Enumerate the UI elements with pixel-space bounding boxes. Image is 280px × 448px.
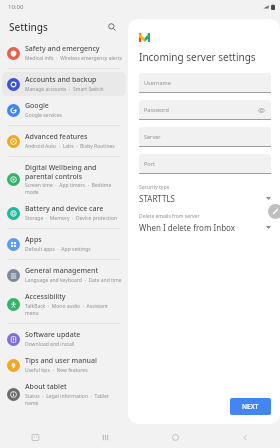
- staticText: Accessibility: [25, 292, 66, 302]
- button[interactable]: Safety and emergency: [2, 41, 126, 65]
- staticText: When I delete from Inbox: [139, 222, 266, 233]
- staticText: Language and keyboard · Date and time: [25, 277, 122, 284]
- button[interactable]: Server: [139, 127, 271, 147]
- staticText: Port: [144, 160, 155, 167]
- staticText: Android Auto · Labs · Bixby Routines: [25, 143, 115, 150]
- staticText: Safety and emergency: [25, 44, 100, 54]
- staticText: Incoming server settings: [139, 50, 256, 64]
- button[interactable]: Digital Wellbeing and parental controls: [2, 160, 126, 199]
- staticText: Status · Legal information · Tablet name: [25, 393, 122, 407]
- staticText: TalkBack · Mono audio · Assistant menu: [25, 303, 122, 317]
- staticText: STARTTLS: [139, 193, 266, 204]
- button[interactable]: Port: [139, 154, 271, 174]
- button[interactable]: apps: [0, 426, 70, 448]
- staticText: Apps: [25, 235, 42, 245]
- button[interactable]: recents: [70, 426, 140, 448]
- staticText: Useful tips · New features: [25, 367, 88, 374]
- button[interactable]: Accounts and backup: [2, 72, 126, 96]
- staticText: Username: [144, 79, 171, 86]
- staticText: Google: [25, 101, 49, 111]
- staticText: Battery and device care: [25, 204, 104, 214]
- staticText: Password: [144, 106, 169, 113]
- button[interactable]: Google: [2, 98, 126, 122]
- staticText: 10:00: [8, 3, 24, 11]
- staticText: Server: [144, 133, 161, 140]
- button[interactable]: Tips and user manual: [2, 353, 126, 377]
- staticText: Download and install: [25, 341, 75, 348]
- button[interactable]: Battery and device care: [2, 201, 126, 225]
- button[interactable]: Password: [139, 100, 271, 120]
- button[interactable]: About tablet: [2, 379, 126, 410]
- button[interactable]: Apps: [2, 232, 126, 256]
- button[interactable]: Advanced features: [2, 129, 126, 153]
- button[interactable]: Show password: [257, 106, 266, 115]
- button[interactable]: home: [140, 426, 210, 448]
- staticText: NEXT: [242, 402, 259, 411]
- button[interactable]: Username: [139, 73, 271, 93]
- staticText: Screen time · App timers · Bedtime mode: [25, 182, 122, 196]
- staticText: Manage accounts · Smart Switch: [25, 86, 104, 93]
- staticText: Security type: [139, 184, 170, 191]
- staticText: Google services: [25, 112, 62, 119]
- staticText: Software update: [25, 330, 81, 340]
- button[interactable]: Accessibility: [2, 289, 126, 320]
- staticText: Default apps · App settings: [25, 246, 91, 253]
- button[interactable]: NEXT: [230, 398, 271, 415]
- staticText: Medical info · Wireless emergency alerts: [25, 55, 122, 62]
- staticText: Advanced features: [25, 132, 88, 142]
- staticText: General management: [25, 266, 99, 276]
- button[interactable]: Search: [104, 19, 120, 35]
- button[interactable]: Software update: [2, 327, 126, 351]
- staticText: About tablet: [25, 382, 67, 392]
- staticText: Storage · Memory · Device protection: [25, 215, 118, 222]
- staticText: Accounts and backup: [25, 75, 97, 85]
- button[interactable]: Delete emails from server: [139, 213, 271, 233]
- button[interactable]: Edit: [268, 204, 280, 219]
- staticText: Digital Wellbeing and parental controls: [25, 163, 122, 181]
- button[interactable]: General management: [2, 263, 126, 287]
- staticText: Tips and user manual: [25, 356, 97, 366]
- staticText: Settings: [9, 20, 48, 34]
- staticText: Delete emails from server: [139, 213, 200, 220]
- button[interactable]: Security type: [139, 184, 271, 204]
